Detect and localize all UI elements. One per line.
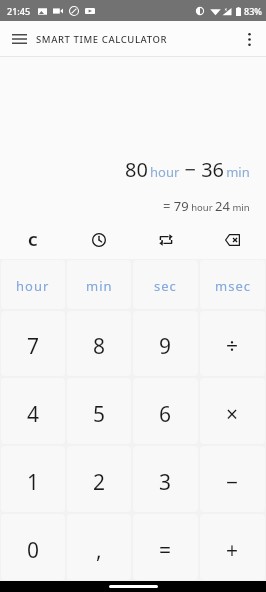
button[interactable]: Clear [0,220,66,259]
button[interactable]: 8 [67,311,131,376]
staticText: min [86,277,113,295]
button[interactable]: 3 [133,446,198,512]
button[interactable]: 0 [1,514,65,580]
button[interactable]: 4 [1,378,65,444]
staticText: 1 [27,468,40,497]
staticText: × [226,400,239,429]
staticText: SMART TIME CALCULATOR [36,33,168,46]
button[interactable]: Swap units [132,220,199,259]
button[interactable]: , [67,514,131,580]
staticText: 80 hour − 36 min [125,156,250,183]
button[interactable]: = [133,514,198,580]
button[interactable]: sec [133,260,198,309]
staticText: 6 [159,400,172,429]
button[interactable]: 9 [133,311,198,376]
button[interactable]: History [66,220,132,259]
staticText: 0 [27,536,40,565]
button[interactable]: 6 [133,378,198,444]
staticText: 3 [159,468,172,497]
staticText: 83% [244,5,262,17]
staticText: 2 [93,468,106,497]
staticText: sec [154,277,177,295]
button[interactable]: msec [200,260,265,309]
button[interactable]: Backspace [199,220,266,259]
staticText: 7 [27,332,40,361]
button[interactable]: + [200,514,265,580]
staticText: 5 [93,400,106,429]
staticText: msec [215,277,251,295]
button[interactable]: − [200,446,265,512]
button[interactable]: 1 [1,446,65,512]
button[interactable]: × [200,378,265,444]
staticText: C [28,230,38,250]
button[interactable]: 2 [67,446,131,512]
staticText: = [159,536,172,565]
staticText: , [96,536,102,565]
staticText: + [226,536,239,565]
staticText: 4 [27,400,40,429]
staticText: hour [16,277,50,295]
button[interactable]: min [67,260,131,309]
staticText: ÷ [226,332,239,361]
staticText: 9 [159,332,172,361]
button[interactable]: 7 [1,311,65,376]
staticText: − [226,468,239,497]
button[interactable]: ÷ [200,311,265,376]
staticText: 8 [93,332,106,361]
staticText: 21:45 [7,5,31,17]
button[interactable]: More options [236,26,262,52]
button[interactable]: hour [1,260,65,309]
button[interactable]: 5 [67,378,131,444]
button[interactable]: Open navigation menu [6,26,32,52]
staticText: = 79 hour 24 min [163,197,250,213]
